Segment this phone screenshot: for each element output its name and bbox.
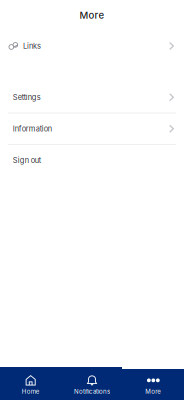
staticText: More: [145, 388, 161, 395]
staticText: Links: [23, 41, 41, 50]
button[interactable]: Home: [0, 369, 61, 400]
button[interactable]: More: [123, 369, 184, 400]
staticText: Home: [22, 388, 40, 395]
staticText: Sign out: [13, 156, 41, 165]
staticText: Notifications: [74, 388, 110, 395]
button[interactable]: Sign out: [0, 145, 184, 175]
staticText: More: [79, 9, 104, 21]
button[interactable]: Links: [0, 30, 184, 61]
staticText: Settings: [13, 93, 41, 102]
button[interactable]: Notifications: [61, 369, 123, 400]
staticText: Information: [13, 124, 52, 133]
button[interactable]: Settings: [0, 82, 184, 112]
button[interactable]: Information: [0, 113, 184, 144]
